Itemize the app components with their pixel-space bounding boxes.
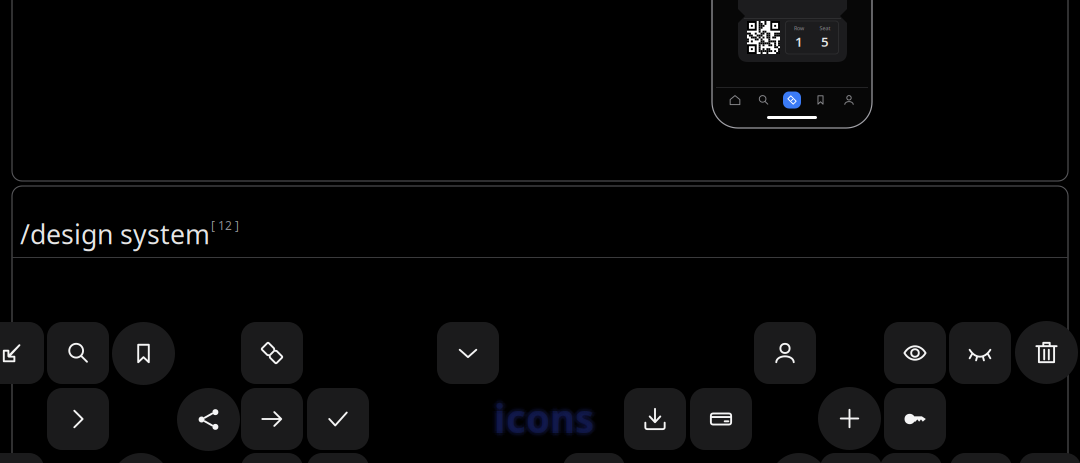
staticText: icons (494, 388, 594, 439)
staticText: icons (496, 394, 596, 446)
staticText: icons (494, 389, 594, 441)
button[interactable]: Profile (563, 453, 625, 463)
button[interactable]: Share (177, 388, 240, 451)
staticText: icons (489, 392, 589, 444)
button[interactable]: Key (884, 388, 946, 450)
button[interactable]: Next (47, 388, 109, 450)
staticText: [ 12 ] (211, 217, 239, 233)
button[interactable]: Add (770, 453, 828, 463)
button[interactable]: Reply (0, 322, 44, 384)
button[interactable]: Ticket (241, 322, 303, 384)
button[interactable]: Go (241, 388, 303, 450)
staticText: icons (491, 392, 591, 444)
staticText: icons (492, 390, 592, 442)
staticText: Seat (819, 25, 830, 32)
button[interactable]: Confirm (307, 388, 369, 450)
staticText: 1 (795, 33, 803, 50)
staticText: 5 (821, 33, 829, 50)
button[interactable]: Saved (811, 90, 829, 110)
button[interactable]: Payment (307, 453, 369, 463)
button[interactable]: Search (754, 90, 772, 110)
staticText: icons (498, 392, 598, 444)
staticText: icons (497, 392, 597, 444)
button[interactable]: Delete (1015, 321, 1078, 384)
button[interactable]: Home (726, 90, 744, 110)
button[interactable]: Tickets (783, 90, 801, 110)
button[interactable]: Payment (690, 388, 752, 450)
button[interactable]: Search (47, 322, 109, 384)
staticText: /design system (20, 216, 210, 252)
button[interactable]: Show (820, 453, 882, 463)
button[interactable]: Expand (437, 322, 499, 384)
staticText: icons (496, 390, 596, 442)
button[interactable]: Download (241, 453, 303, 463)
staticText: icons (492, 394, 592, 446)
staticText: icons (494, 397, 594, 448)
staticText: icons (494, 395, 594, 447)
button[interactable]: Confirm (950, 453, 1012, 463)
button[interactable]: Profile (840, 90, 858, 110)
button[interactable]: Key (880, 453, 942, 463)
button[interactable]: Bookmark (112, 453, 170, 463)
button[interactable]: Profile (754, 322, 816, 384)
button[interactable]: Search (0, 453, 44, 463)
staticText: icons (494, 392, 594, 444)
button[interactable]: Add (818, 387, 881, 450)
button[interactable]: Show (884, 322, 946, 384)
button[interactable]: Download (624, 388, 686, 450)
button[interactable]: Go (1019, 453, 1080, 463)
button[interactable]: Hide (949, 322, 1011, 384)
button[interactable]: Bookmark (112, 322, 175, 385)
staticText: Row (794, 25, 804, 32)
